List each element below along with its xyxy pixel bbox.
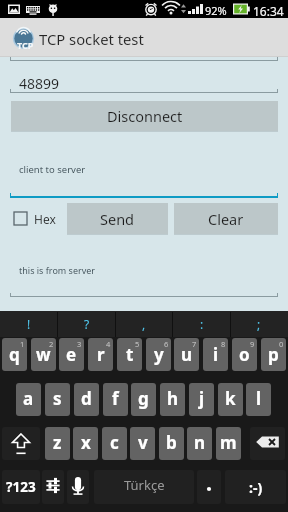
staticText: u <box>181 343 193 366</box>
staticText: 4 <box>106 339 111 349</box>
button[interactable]: q <box>2 338 27 371</box>
staticText: i <box>213 343 219 366</box>
staticText: 5 <box>135 339 140 349</box>
staticText: ?123 <box>6 478 36 496</box>
button[interactable]: f <box>103 383 128 416</box>
staticText: 92% <box>205 3 227 18</box>
staticText: ? <box>84 316 90 332</box>
staticText: o <box>239 343 250 366</box>
button[interactable]: t <box>117 338 142 371</box>
button[interactable]: p <box>261 338 286 371</box>
staticText: this is from server <box>19 264 96 276</box>
button[interactable]: d <box>74 383 99 416</box>
staticText: 9 <box>250 339 255 349</box>
button[interactable]: ! <box>0 311 58 337</box>
staticText: Türkçe <box>124 476 165 494</box>
button[interactable]: :-) <box>225 470 286 504</box>
staticText: TCP <box>17 39 34 51</box>
staticText: Send <box>100 209 135 229</box>
button[interactable]: Türkçe <box>94 470 194 504</box>
button[interactable]: v <box>130 427 155 460</box>
button[interactable]: Disconnect <box>11 101 278 131</box>
button[interactable]: a <box>16 383 41 416</box>
button[interactable]: z <box>45 427 70 460</box>
button[interactable]: Voice input <box>67 470 89 504</box>
button[interactable]: Hex <box>8 203 62 234</box>
staticText: z <box>53 431 62 454</box>
staticText: h <box>167 387 179 410</box>
staticText: r <box>97 343 105 366</box>
button[interactable]: x <box>73 427 98 460</box>
staticText: 2 <box>49 339 54 349</box>
staticText: 1 <box>20 339 25 349</box>
staticText: ; <box>257 316 261 332</box>
button[interactable]: s <box>45 383 70 416</box>
staticText: 8 <box>221 339 226 349</box>
staticText: Disconnect <box>107 106 183 126</box>
staticText: q <box>9 343 20 366</box>
button[interactable]: c <box>102 427 127 460</box>
staticText: Clear <box>208 209 244 229</box>
button[interactable]: m <box>216 427 241 460</box>
staticText: w <box>36 343 51 366</box>
staticText: k <box>225 387 236 410</box>
staticText: j <box>199 387 205 410</box>
button[interactable]: Clear <box>174 203 278 234</box>
staticText: 7 <box>192 339 197 349</box>
staticText: d <box>81 387 92 410</box>
staticText: 6 <box>164 339 169 349</box>
button[interactable]: ? <box>58 311 116 337</box>
button[interactable]: k <box>218 383 243 416</box>
button[interactable]: g <box>131 383 156 416</box>
staticText: p <box>268 343 279 366</box>
staticText: a <box>23 387 34 410</box>
button[interactable]: : <box>173 311 231 337</box>
button[interactable]: l <box>246 383 271 416</box>
button[interactable]: ; <box>230 311 288 337</box>
staticText: 0 <box>279 339 284 349</box>
button[interactable]: ?123 <box>2 470 40 504</box>
button[interactable]: i <box>203 338 228 371</box>
staticText: v <box>138 431 148 454</box>
staticText: s <box>53 387 62 410</box>
staticText: c <box>110 431 119 454</box>
staticText: 16:34 <box>253 3 284 19</box>
button[interactable]: b <box>159 427 184 460</box>
staticText: y <box>154 343 164 366</box>
staticText: , <box>142 316 146 332</box>
staticText: ! <box>27 316 31 332</box>
button[interactable]: Backspace <box>250 427 285 460</box>
staticText: l <box>256 387 262 410</box>
staticText: :-) <box>249 478 263 497</box>
button[interactable]: r <box>88 338 113 371</box>
button[interactable]: y <box>146 338 171 371</box>
staticText: m <box>220 431 237 454</box>
staticText: client to server <box>19 163 86 176</box>
button[interactable]: , <box>115 311 173 337</box>
button[interactable]: Send <box>67 203 168 234</box>
staticText: n <box>194 431 206 454</box>
button[interactable]: w <box>31 338 56 371</box>
staticText: f <box>112 387 119 410</box>
staticText: e <box>66 343 77 366</box>
staticText: TCP socket test <box>39 29 144 49</box>
button[interactable]: Period <box>197 470 221 504</box>
button[interactable]: u <box>174 338 199 371</box>
staticText: : <box>200 316 204 332</box>
button[interactable]: j <box>189 383 214 416</box>
staticText: 3 <box>77 339 82 349</box>
staticText: Hex <box>34 211 56 227</box>
button[interactable]: Settings <box>42 470 64 504</box>
staticText: t <box>126 343 134 366</box>
button[interactable]: Shift <box>2 427 40 460</box>
staticText: b <box>166 431 177 454</box>
button[interactable]: n <box>187 427 212 460</box>
button[interactable]: e <box>59 338 84 371</box>
staticText: x <box>81 431 91 454</box>
staticText: g <box>138 387 149 410</box>
staticText: 48899 <box>19 74 60 93</box>
button[interactable]: h <box>160 383 185 416</box>
button[interactable]: o <box>232 338 257 371</box>
